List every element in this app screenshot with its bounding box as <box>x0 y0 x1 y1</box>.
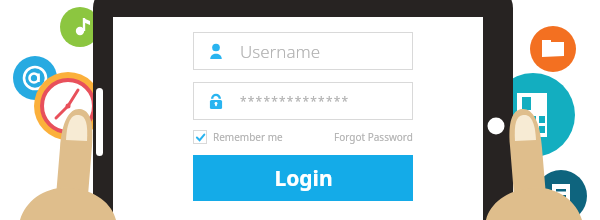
button[interactable]: Login <box>193 155 413 201</box>
button[interactable]: Remember me <box>193 130 283 144</box>
button[interactable]: Username <box>193 32 413 70</box>
staticText: Remember me <box>213 130 283 144</box>
staticText: Forgot Password <box>334 130 413 144</box>
button[interactable]: Forgot Password <box>334 130 413 144</box>
button[interactable]: Music <box>60 6 100 46</box>
staticText: Login <box>274 164 333 193</box>
staticText: Username <box>240 40 321 63</box>
button[interactable]: Email <box>13 56 57 100</box>
button[interactable]: Files <box>520 18 566 64</box>
button[interactable]: ************** <box>193 82 413 120</box>
staticText: ************** <box>240 93 350 109</box>
